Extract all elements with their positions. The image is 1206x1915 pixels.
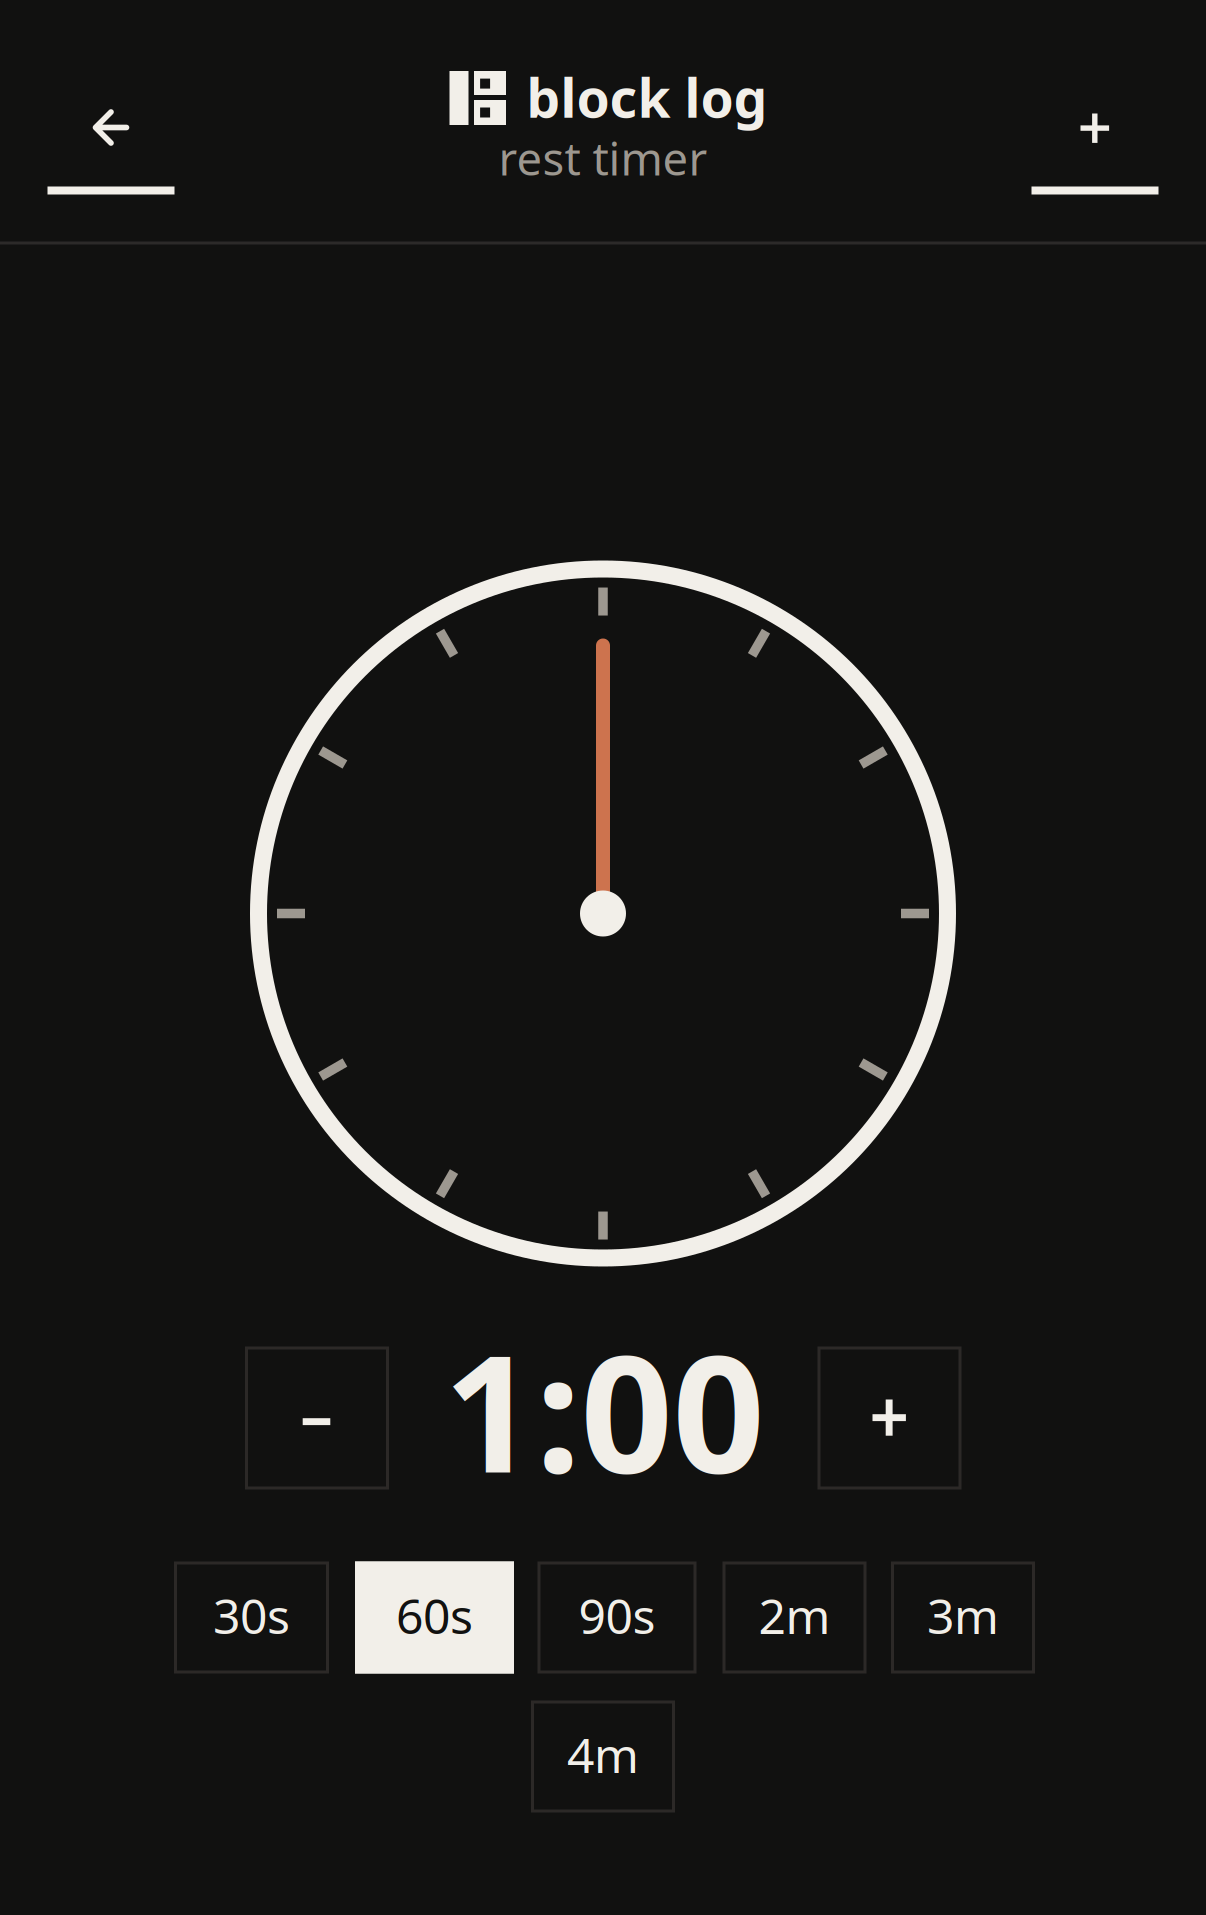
button[interactable]: 30s <box>174 1561 329 1673</box>
button[interactable]: 4m <box>531 1700 675 1812</box>
button[interactable]: Back <box>47 35 174 195</box>
staticText: 4m <box>567 1723 639 1786</box>
button[interactable]: Increase rest time <box>817 1346 961 1489</box>
button[interactable]: 60s <box>355 1561 514 1673</box>
staticText: 90s <box>578 1584 655 1647</box>
staticText: block log <box>526 62 767 132</box>
staticText: 3m <box>927 1584 999 1647</box>
button[interactable]: 90s <box>537 1561 696 1673</box>
staticText: 1:00 <box>443 1303 764 1517</box>
staticText: 2m <box>758 1584 830 1647</box>
staticText: 60s <box>396 1584 473 1647</box>
button[interactable]: New entry <box>1031 35 1158 195</box>
staticText: rest timer <box>498 128 707 188</box>
staticText: 30s <box>213 1584 290 1647</box>
button[interactable]: 2m <box>722 1561 866 1673</box>
button[interactable]: 3m <box>891 1561 1035 1673</box>
button[interactable]: Decrease rest time <box>245 1346 389 1489</box>
